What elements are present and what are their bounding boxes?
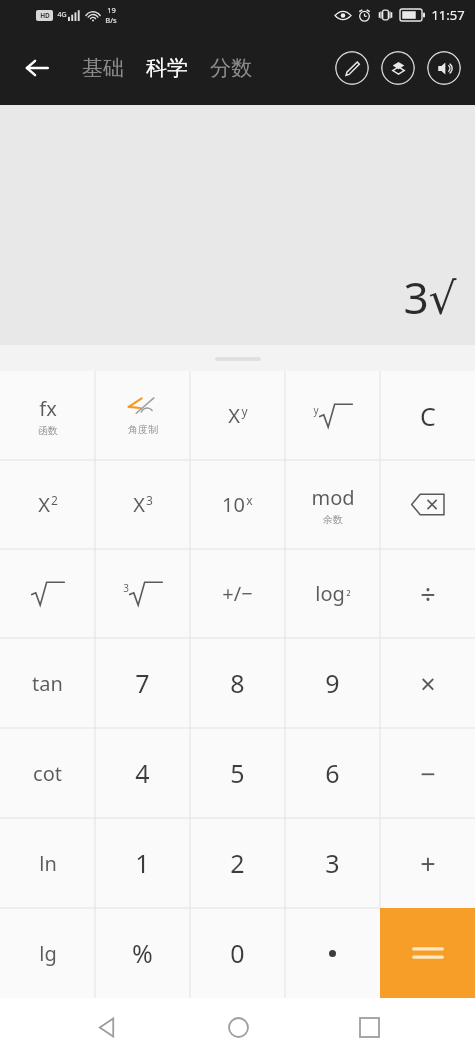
button[interactable] [0, 549, 95, 638]
staticText: 9 [325, 666, 340, 700]
button[interactable]: ln [0, 818, 95, 908]
button[interactable]: 0 [190, 908, 285, 998]
button[interactable]: mod [285, 460, 380, 549]
button[interactable]: 5 [190, 728, 285, 818]
staticText: 19 [107, 5, 116, 15]
staticText: 3 [123, 581, 129, 595]
button[interactable]: 1 [95, 818, 190, 908]
staticText: 8 [230, 666, 245, 700]
staticText: 4 [135, 756, 150, 790]
staticText: HD [40, 11, 50, 20]
button[interactable]: X [0, 460, 95, 549]
button[interactable]: 分数 [204, 49, 258, 87]
button[interactable]: % [95, 908, 190, 998]
staticText: ₂ [346, 581, 351, 597]
button[interactable]: 6 [285, 728, 380, 818]
staticText: 3 [325, 846, 340, 880]
staticText: X [133, 491, 145, 518]
button[interactable]: Home [213, 1002, 263, 1052]
button[interactable]: + [380, 818, 475, 908]
staticText: log [315, 580, 345, 607]
button[interactable]: Back [81, 1002, 131, 1052]
button[interactable]: 10 [190, 460, 285, 549]
button[interactable]: lg [0, 908, 95, 998]
button[interactable]: tan [0, 638, 95, 728]
staticText: 3√ [403, 267, 457, 327]
button[interactable]: X [190, 371, 285, 460]
staticText: y [313, 403, 319, 417]
button[interactable]: × [380, 638, 475, 728]
button[interactable]: Back [14, 45, 60, 91]
button[interactable] [380, 908, 475, 998]
button[interactable]: X [95, 460, 190, 549]
staticText: X [228, 402, 240, 429]
staticText: 科学 [146, 55, 188, 81]
staticText: 0 [230, 936, 245, 970]
staticText: 余数 [323, 513, 343, 526]
staticText: mod [311, 484, 355, 511]
button[interactable]: Edit [335, 51, 369, 85]
button[interactable]: ÷ [380, 549, 475, 638]
staticText: y [241, 403, 248, 419]
button[interactable]: 科学 [140, 49, 194, 87]
staticText: tan [32, 670, 63, 697]
staticText: 2 [230, 846, 245, 880]
staticText: ÷ [420, 575, 436, 612]
button[interactable]: y [285, 371, 380, 460]
staticText: B/s [105, 15, 117, 25]
staticText: 11:57 [431, 6, 465, 24]
staticText: 5 [230, 756, 245, 790]
button[interactable]: cot [0, 728, 95, 818]
button[interactable]: 基础 [76, 49, 130, 87]
staticText: 角度制 [128, 423, 158, 436]
staticText: 10 [222, 491, 245, 518]
button[interactable]: 7 [95, 638, 190, 728]
button[interactable]: Sound [427, 51, 461, 85]
staticText: + [420, 845, 436, 882]
staticText: x [246, 492, 253, 508]
staticText: 7 [135, 666, 150, 700]
button[interactable] [285, 908, 380, 998]
staticText: X [38, 491, 50, 518]
button[interactable]: 3 [285, 818, 380, 908]
staticText: 6 [325, 756, 340, 790]
button[interactable]: Recents [344, 1002, 394, 1052]
button[interactable]: +/− [190, 549, 285, 638]
button[interactable]: History [381, 51, 415, 85]
staticText: 4G [57, 10, 67, 20]
staticText: ln [39, 850, 57, 877]
staticText: 2 [51, 492, 58, 508]
staticText: 3 [146, 492, 153, 508]
staticText: − [420, 755, 436, 792]
button[interactable]: log [285, 549, 380, 638]
button[interactable]: 3 [95, 549, 190, 638]
staticText: 分数 [210, 55, 252, 81]
button[interactable]: 4 [95, 728, 190, 818]
staticText: 函数 [38, 424, 58, 437]
staticText: C [420, 399, 436, 433]
button[interactable]: 2 [190, 818, 285, 908]
staticText: 基础 [82, 55, 124, 81]
button[interactable] [380, 460, 475, 549]
staticText: % [132, 936, 153, 970]
button[interactable]: fx [0, 371, 95, 460]
button[interactable]: C [380, 371, 475, 460]
button[interactable]: − [380, 728, 475, 818]
button[interactable]: 角度制 [95, 371, 190, 460]
staticText: +/− [222, 580, 253, 607]
staticText: cot [33, 760, 62, 787]
staticText: × [420, 665, 436, 702]
staticText: lg [39, 940, 57, 967]
button[interactable]: 9 [285, 638, 380, 728]
staticText: 1 [135, 846, 150, 880]
staticText: fx [39, 395, 57, 422]
button[interactable]: 8 [190, 638, 285, 728]
